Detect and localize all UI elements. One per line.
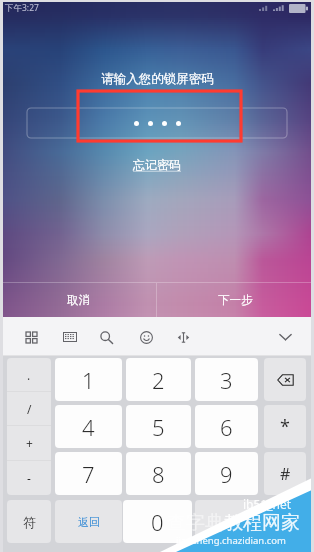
staticText: 8 [152,459,165,489]
staticText: 7 [82,459,95,489]
button[interactable]: # [264,452,306,495]
staticText: 查字典 [167,511,224,535]
button[interactable]: 5 [126,405,191,448]
button[interactable]: Backspace [264,358,306,401]
staticText: / [27,401,32,417]
staticText: 2 [152,365,165,395]
staticText: 教程网家 [224,511,300,535]
button[interactable]: 符 [7,500,51,543]
button[interactable]: 3 [195,358,258,401]
staticText: 0 [151,507,164,537]
staticText: + [26,435,33,451]
staticText: 3 [220,365,233,395]
staticText: # [280,463,291,485]
staticText: . [27,367,31,383]
button[interactable]: 6 [195,405,258,448]
staticText: 取消 [67,293,90,307]
staticText: 返回 [78,515,100,529]
button[interactable]: Emoji [133,318,159,356]
button[interactable]: 返回 [55,500,122,543]
staticText: 下午3:27 [5,2,39,14]
staticText: 6 [220,412,233,442]
button[interactable]: 1 [55,358,122,401]
button[interactable]: Hide keyboard [272,318,298,356]
staticText: 忘记密码 [133,157,181,172]
button[interactable]: Apps [18,318,44,356]
button[interactable]: . [7,358,51,391]
button[interactable]: + [7,426,51,460]
button[interactable]: 忘记密码 [131,157,183,172]
staticText: 4 [82,412,95,442]
staticText: - [27,470,31,486]
button[interactable]: Keyboard layout [57,318,83,356]
button[interactable]: 下一步 [157,283,314,317]
button[interactable]: - [7,461,51,495]
staticText: * [280,414,290,439]
staticText: 1 [82,365,95,395]
button[interactable]: 9 [195,452,258,495]
staticText: 5 [152,412,165,442]
button[interactable]: 2 [126,358,191,401]
button[interactable]: Search [93,318,119,356]
button[interactable]: Move cursor [170,318,196,356]
button[interactable]: 0 [123,500,192,543]
staticText: 请输入您的锁屏密码 [101,71,214,87]
staticText: jiaocheng.chazidian.com [176,534,286,547]
button[interactable]: 8 [126,452,191,495]
staticText: 9 [220,459,233,489]
staticText: 下一步 [218,293,253,307]
button[interactable]: 4 [55,405,122,448]
staticText: ib51_net [243,496,292,512]
button[interactable]: Enter [264,500,306,543]
button[interactable]: * [264,405,306,448]
staticText: 符 [23,514,36,530]
button[interactable]: / [7,392,51,425]
button[interactable]: 7 [55,452,122,495]
button[interactable]: 取消 [0,283,156,317]
button[interactable]: Confirm [195,500,258,543]
